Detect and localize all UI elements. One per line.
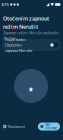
button[interactable]: Použít funkci Otočením [2,39,61,51]
staticText: režim Nerušit [3,23,38,30]
button[interactable]: Další informace [38,122,63,130]
staticText: Další informace [44,123,57,130]
staticText: Použít funkci Otočením [5,37,26,47]
staticText: Zapnete režim Nerušit otočením displeje [3,30,59,41]
staticText: Nastavení [8,124,25,129]
staticText: zapnout Nerušit [5,48,32,53]
staticText: Otočením zapnout [3,15,49,22]
staticText: 8:15 [1,2,8,7]
staticText: obrazovkou dolů. [3,41,32,46]
button[interactable]: Nastavení [0,122,25,131]
